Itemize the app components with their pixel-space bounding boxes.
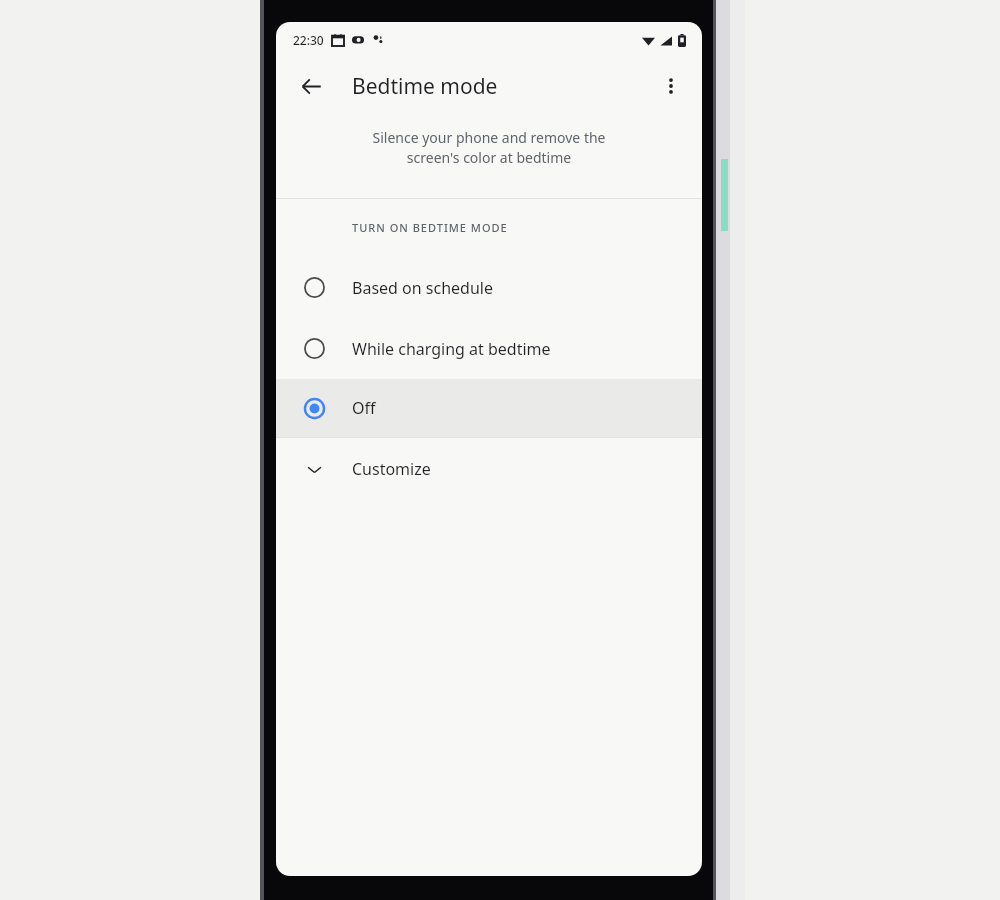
button[interactable]: More options xyxy=(651,66,691,106)
staticText: While charging at bedtime xyxy=(352,338,551,360)
staticText: Based on schedule xyxy=(352,277,493,299)
staticText: Off xyxy=(352,397,376,419)
button[interactable]: Back xyxy=(290,65,332,107)
button[interactable]: Off xyxy=(276,379,702,437)
staticText: 22:30 xyxy=(293,32,324,48)
staticText: Bedtime mode xyxy=(352,72,498,101)
button[interactable]: Customize xyxy=(276,438,702,500)
button[interactable]: Based on schedule xyxy=(276,257,702,318)
button[interactable]: While charging at bedtime xyxy=(276,318,702,379)
staticText: Customize xyxy=(352,458,431,480)
staticText: TURN ON BEDTIME MODE xyxy=(352,220,508,235)
staticText: Silence your phone and remove the screen… xyxy=(316,128,662,167)
